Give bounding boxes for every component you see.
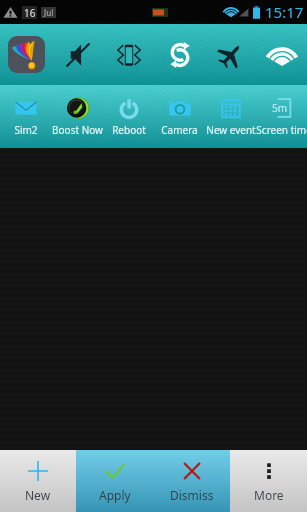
staticText: Reboot <box>112 123 146 137</box>
staticText: Sim2 <box>14 123 38 137</box>
button[interactable]: Camera <box>154 85 205 148</box>
button[interactable]: Wi-Fi <box>256 24 307 85</box>
button[interactable]: Sync <box>154 24 205 85</box>
staticText: Apply <box>99 487 131 503</box>
button[interactable]: New event <box>205 85 256 148</box>
button[interactable]: Boost Now <box>52 85 103 148</box>
staticText: 5m <box>272 101 288 115</box>
staticText: 16 <box>24 6 36 19</box>
staticText: Boost Now <box>52 123 103 137</box>
staticText: Screen timeout <box>256 123 307 137</box>
button[interactable]: Vibrate <box>103 24 154 85</box>
button[interactable]: Airplane mode <box>205 24 256 85</box>
button[interactable]: New <box>0 450 76 512</box>
staticText: Camera <box>161 123 198 137</box>
staticText: More <box>254 487 284 503</box>
button[interactable]: Dismiss <box>153 450 230 512</box>
button[interactable]: Apply <box>76 450 153 512</box>
staticText: Jul <box>44 7 54 18</box>
button[interactable]: Reboot <box>103 85 154 148</box>
button[interactable]: Sim2 <box>0 85 52 148</box>
staticText: Dismiss <box>170 487 214 503</box>
staticText: New <box>25 487 51 503</box>
button[interactable]: 5m <box>256 85 307 148</box>
button[interactable]: App shortcut <box>8 36 45 73</box>
staticText: 15:17 <box>265 2 304 22</box>
button[interactable]: More <box>230 450 307 512</box>
button[interactable]: Sound off <box>52 24 103 85</box>
staticText: New event <box>206 123 256 137</box>
